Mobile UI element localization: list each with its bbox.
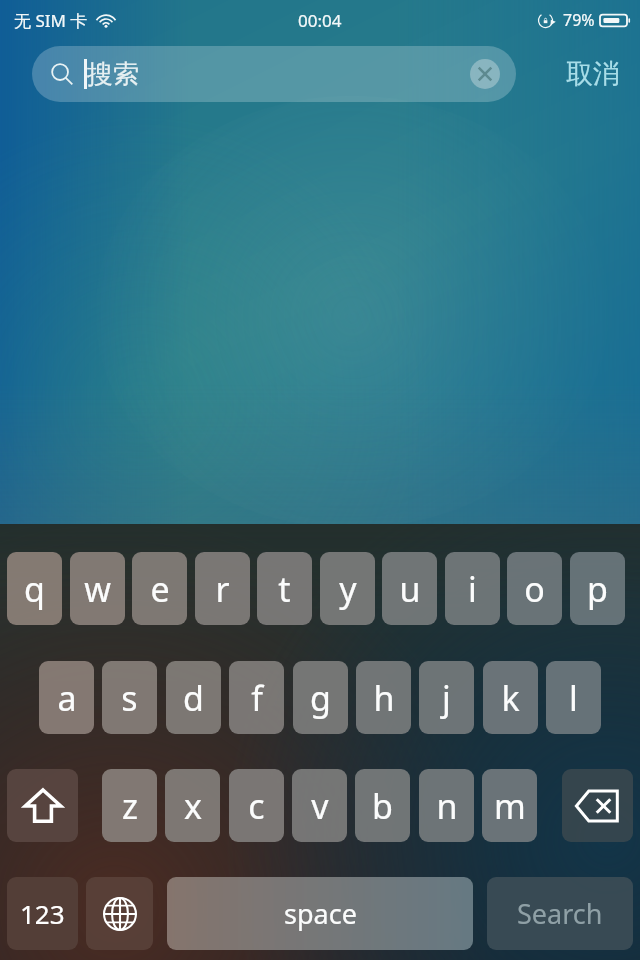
staticText: u [399,566,421,612]
button[interactable]: l [546,661,601,734]
staticText: o [524,566,545,612]
button[interactable]: b [355,769,410,842]
button[interactable]: w [70,552,125,625]
staticText: c [248,783,265,829]
button[interactable]: z [102,769,157,842]
staticText: y [339,566,357,612]
staticText: space [284,895,357,932]
staticText: x [184,783,202,829]
button[interactable]: u [382,552,437,625]
button[interactable]: i [445,552,500,625]
button[interactable]: x [165,769,220,842]
staticText: m [494,783,526,829]
button[interactable]: Clear search [468,57,502,91]
staticText: a [57,675,77,721]
staticText: p [587,566,608,612]
button[interactable]: f [229,661,284,734]
button[interactable]: v [292,769,347,842]
button[interactable]: e [132,552,187,625]
staticText: s [121,675,138,721]
staticText: r [215,566,230,612]
staticText: n [436,783,458,829]
button[interactable]: d [166,661,221,734]
button[interactable]: Change keyboard language [86,877,153,950]
staticText: g [310,675,331,721]
staticText: b [372,783,393,829]
button[interactable]: r [195,552,250,625]
button[interactable]: 取消 [556,49,630,99]
button[interactable]: a [39,661,94,734]
staticText: j [442,675,451,721]
staticText: v [311,783,329,829]
button[interactable]: k [483,661,538,734]
button[interactable]: y [320,552,375,625]
staticText: i [468,566,477,612]
button[interactable]: c [229,769,284,842]
staticText: 取消 [566,57,620,91]
staticText: d [183,675,204,721]
button[interactable]: 123 [7,877,78,950]
staticText: w [84,566,111,612]
button[interactable]: Backspace [562,769,633,842]
staticText: Search [517,895,603,932]
staticText: 搜索 [87,58,139,91]
staticText: 00:04 [298,9,342,32]
button[interactable]: 搜索 [32,46,516,102]
staticText: z [122,783,138,829]
button[interactable]: n [419,769,474,842]
button[interactable]: o [507,552,562,625]
button[interactable]: j [419,661,474,734]
button[interactable]: p [570,552,625,625]
staticText: l [569,675,578,721]
button[interactable]: t [257,552,312,625]
button[interactable]: h [356,661,411,734]
staticText: h [373,675,395,721]
staticText: f [251,675,263,721]
button[interactable]: s [102,661,157,734]
button[interactable]: g [293,661,348,734]
staticText: 123 [20,896,65,931]
staticText: q [24,566,45,612]
button[interactable]: space [167,877,473,950]
button[interactable]: Search [487,877,633,950]
button[interactable]: m [482,769,537,842]
button[interactable]: Shift [7,769,78,842]
staticText: 无 SIM 卡 [14,9,88,32]
staticText: t [278,566,291,612]
staticText: k [501,675,520,721]
staticText: e [150,566,170,612]
button[interactable]: q [7,552,62,625]
staticText: 79% [563,9,595,31]
